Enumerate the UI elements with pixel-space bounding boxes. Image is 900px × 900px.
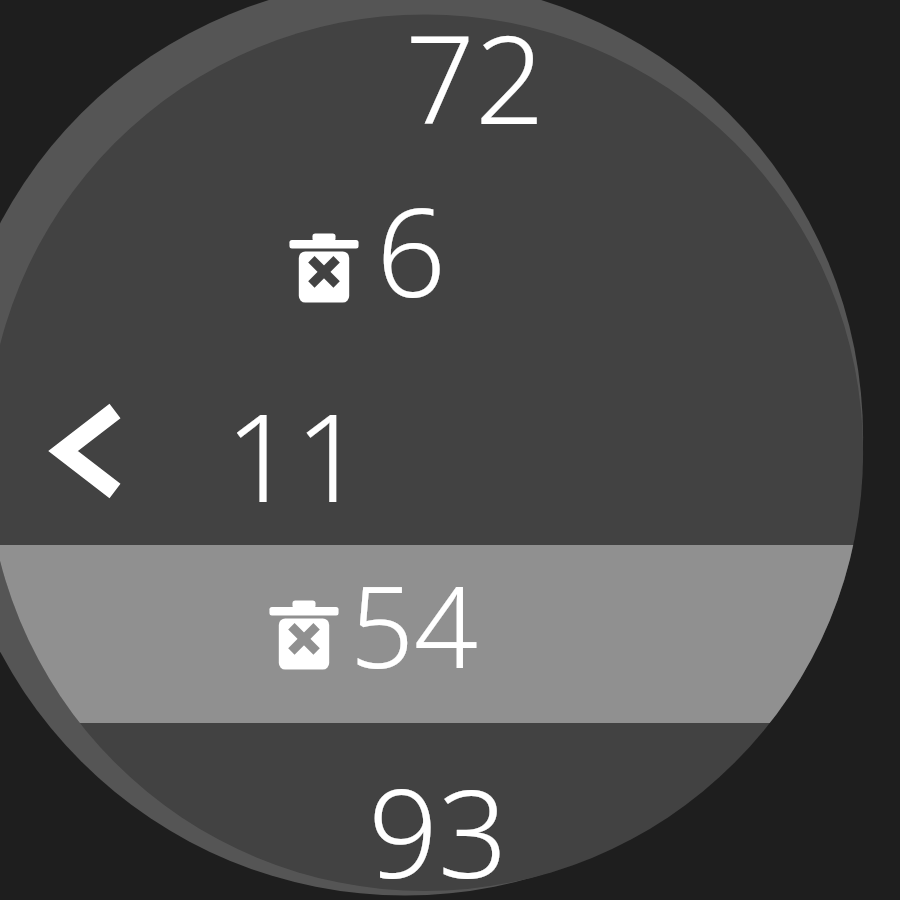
staticText: 54 xyxy=(350,548,478,701)
button[interactable]: 72 xyxy=(405,0,545,160)
button[interactable]: 11 xyxy=(225,372,365,538)
button[interactable]: Back xyxy=(50,398,128,504)
staticText: 6 xyxy=(376,167,446,333)
button[interactable]: 54 xyxy=(0,545,900,723)
button[interactable]: 93 xyxy=(368,748,508,900)
button[interactable]: 6 xyxy=(288,185,446,351)
